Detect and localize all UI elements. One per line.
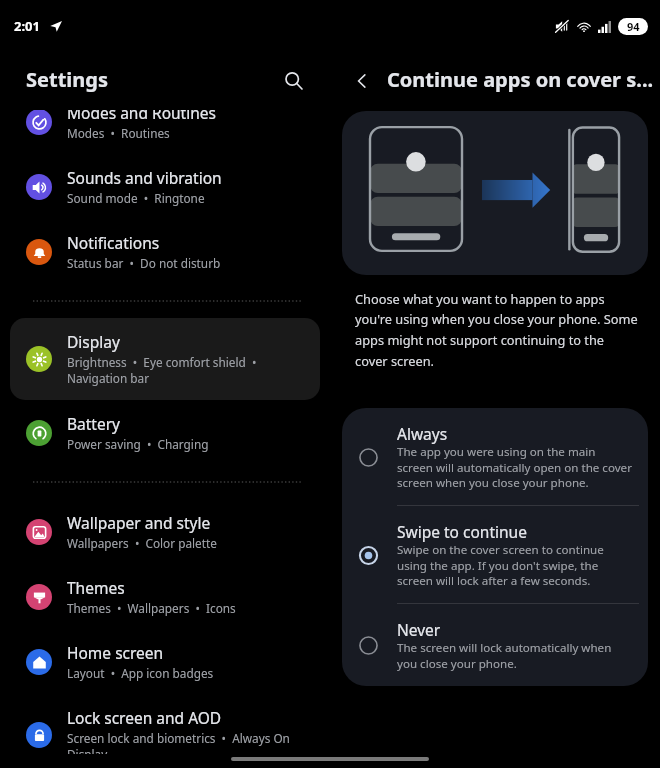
staticText: Settings	[26, 66, 108, 93]
staticText: Themes	[67, 577, 125, 598]
staticText: Layout • App icon badges	[67, 665, 214, 681]
button[interactable]: Wallpaper and style	[10, 499, 320, 564]
staticText: Swipe to continue	[397, 521, 527, 542]
staticText: 2:01	[14, 17, 40, 35]
staticText: Modes and Routines	[67, 110, 216, 123]
staticText: Modes • Routines	[67, 125, 170, 141]
staticText: Brightness • Eye comfort shield • Naviga…	[67, 354, 312, 387]
button[interactable]: Modes and Routines	[10, 110, 320, 154]
staticText: Sound mode • Ringtone	[67, 190, 205, 206]
staticText: Never	[397, 619, 441, 640]
staticText: Lock screen and AOD	[67, 707, 222, 728]
button[interactable]: Themes	[10, 564, 320, 629]
staticText: Battery	[67, 413, 121, 434]
staticText: Continue apps on cover s...	[387, 66, 654, 93]
staticText: The app you were using on the main scree…	[397, 444, 632, 490]
staticText: 94	[627, 19, 640, 34]
button[interactable]: Display	[10, 318, 320, 400]
staticText: Wallpaper and style	[67, 512, 211, 533]
button[interactable]: Always	[342, 408, 648, 505]
staticText: Notifications	[67, 232, 160, 253]
staticText: Choose what you want to happen to apps y…	[355, 290, 638, 370]
staticText: Wallpapers • Color palette	[67, 535, 217, 551]
button[interactable]: Back	[346, 65, 378, 97]
button[interactable]: Search	[278, 65, 310, 97]
staticText: Display	[67, 331, 120, 352]
staticText: Home screen	[67, 642, 164, 663]
staticText: Status bar • Do not disturb	[67, 255, 221, 271]
staticText: Screen lock and biometrics • Always On D…	[67, 730, 312, 754]
button[interactable]: Lock screen and AOD	[10, 694, 320, 754]
staticText: Swipe on the cover screen to continue us…	[397, 542, 604, 588]
staticText: The screen will lock automatically when …	[397, 640, 612, 671]
button[interactable]: Home screen	[10, 629, 320, 694]
button[interactable]: Never	[342, 604, 648, 686]
button[interactable]: Battery	[10, 400, 320, 465]
button[interactable]: Sounds and vibration	[10, 154, 320, 219]
staticText: Always	[397, 423, 448, 444]
staticText: Power saving • Charging	[67, 436, 209, 452]
button[interactable]: Notifications	[10, 219, 320, 284]
button[interactable]: Swipe to continue	[342, 506, 648, 603]
staticText: Sounds and vibration	[67, 167, 222, 188]
staticText: Themes • Wallpapers • Icons	[67, 600, 236, 616]
